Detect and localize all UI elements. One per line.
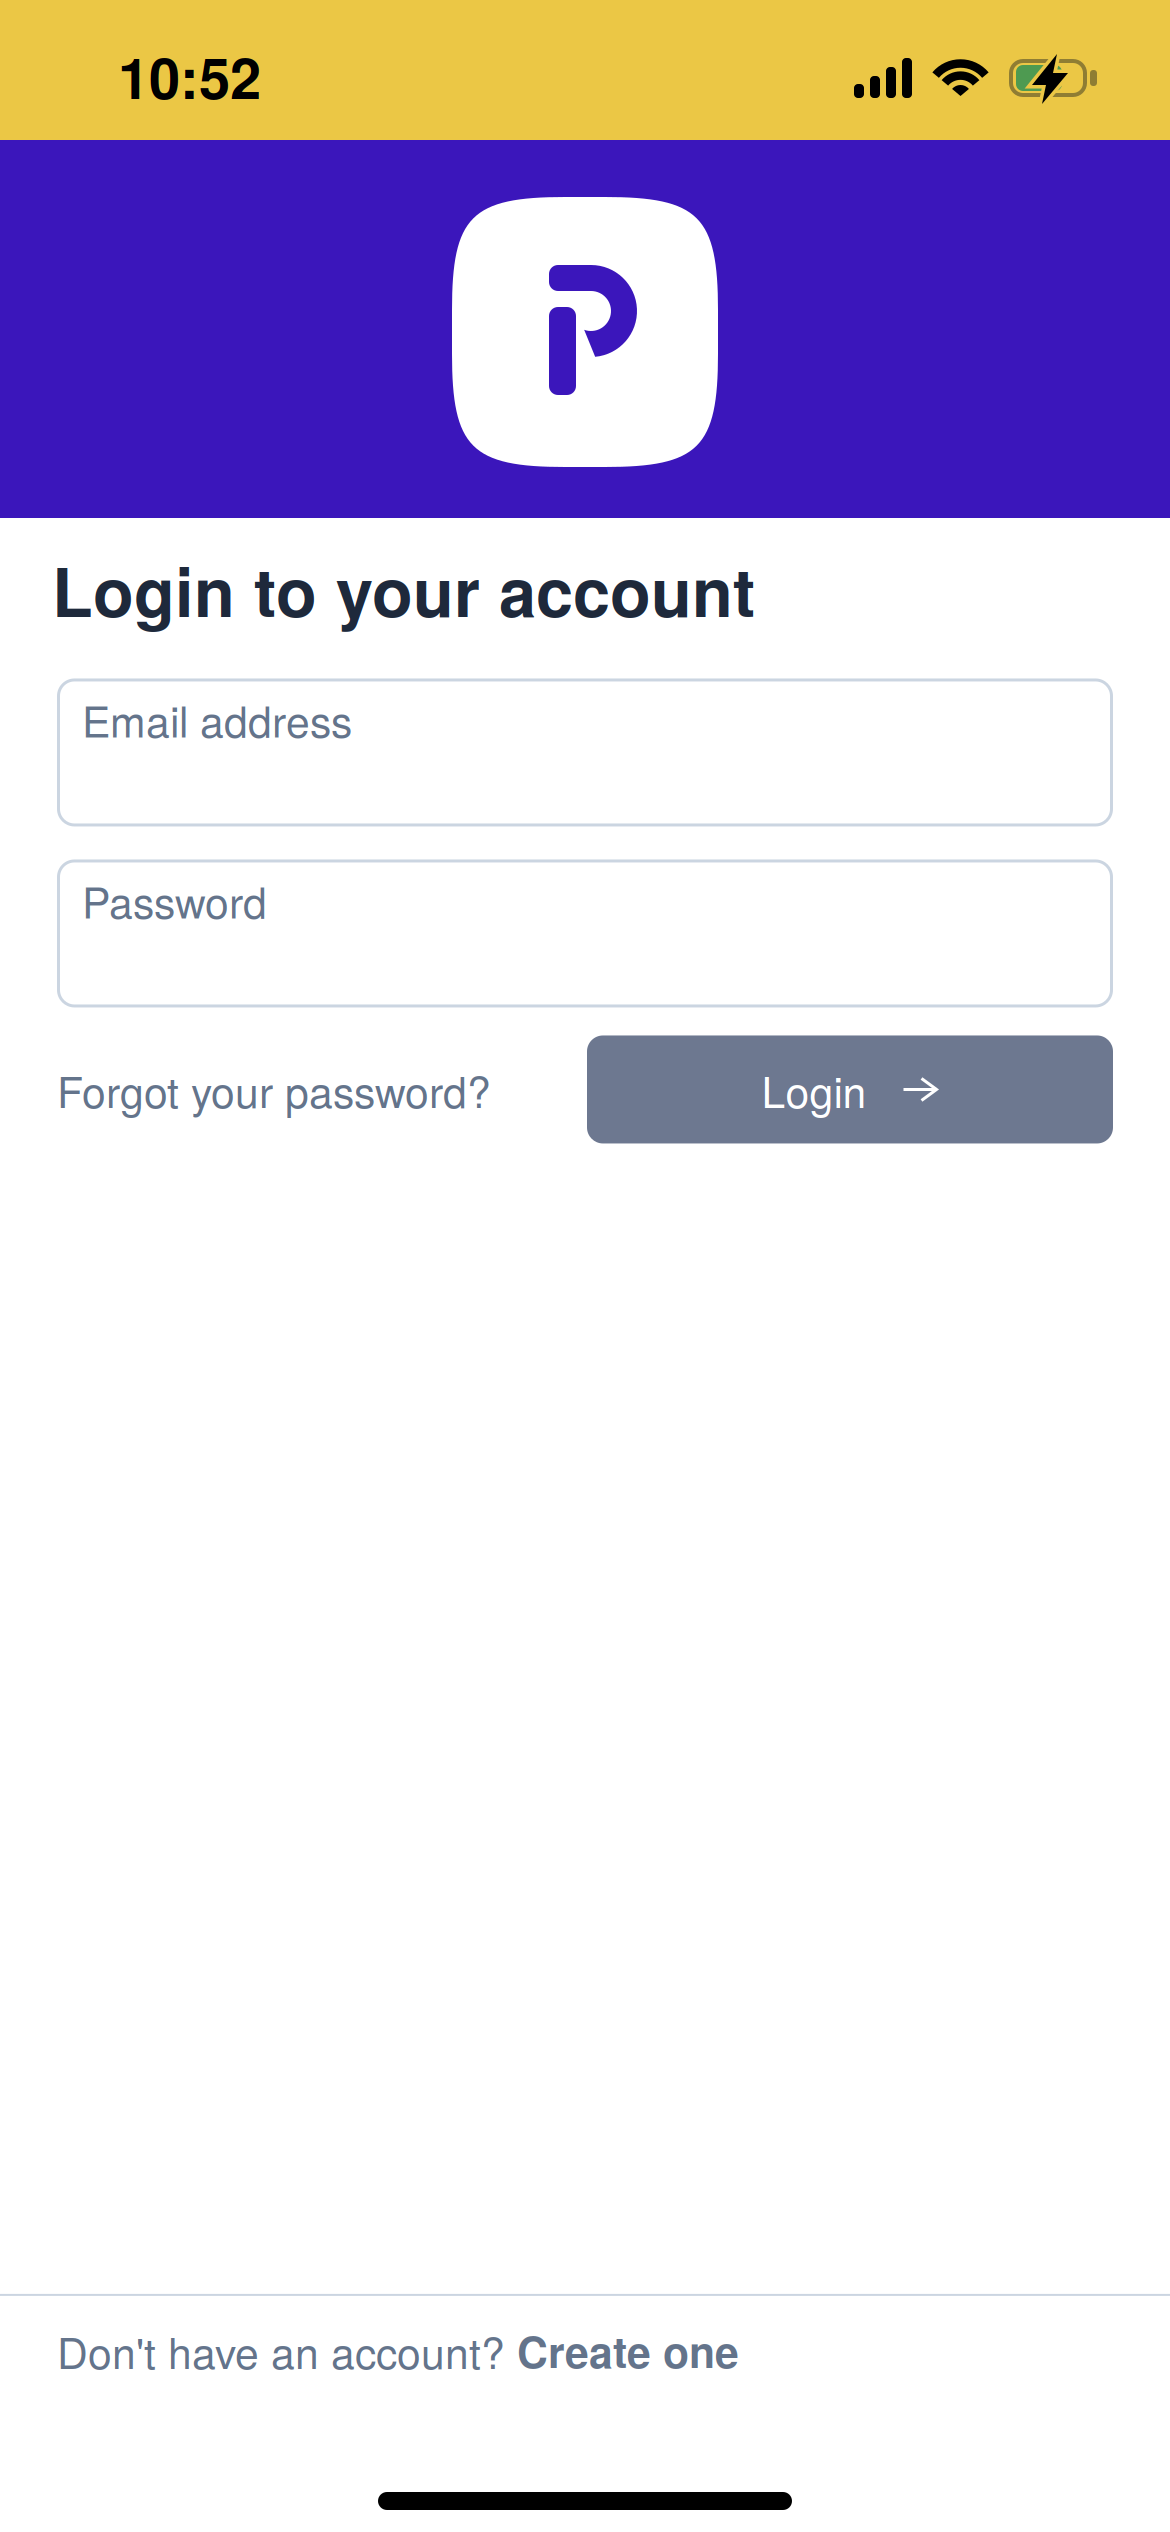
button[interactable]: Forgot your password? <box>57 1059 491 1120</box>
staticText: Email address <box>82 688 352 750</box>
staticText: Create one <box>517 2320 739 2381</box>
button[interactable]: Login <box>587 1035 1113 1143</box>
textField[interactable]: Email address <box>57 678 1113 709</box>
staticText: Login to your account <box>52 542 755 637</box>
textField[interactable]: Password <box>57 859 1113 890</box>
staticText: Login <box>761 1059 866 1120</box>
staticText: 10:52 <box>118 36 261 116</box>
button[interactable]: Create one <box>517 2320 739 2381</box>
staticText: Email address <box>57 678 207 709</box>
staticText: Password <box>57 859 161 890</box>
staticText: Forgot your password? <box>57 1059 491 1120</box>
staticText: Password <box>82 869 267 931</box>
staticText: Don't have an account? <box>57 2320 517 2381</box>
